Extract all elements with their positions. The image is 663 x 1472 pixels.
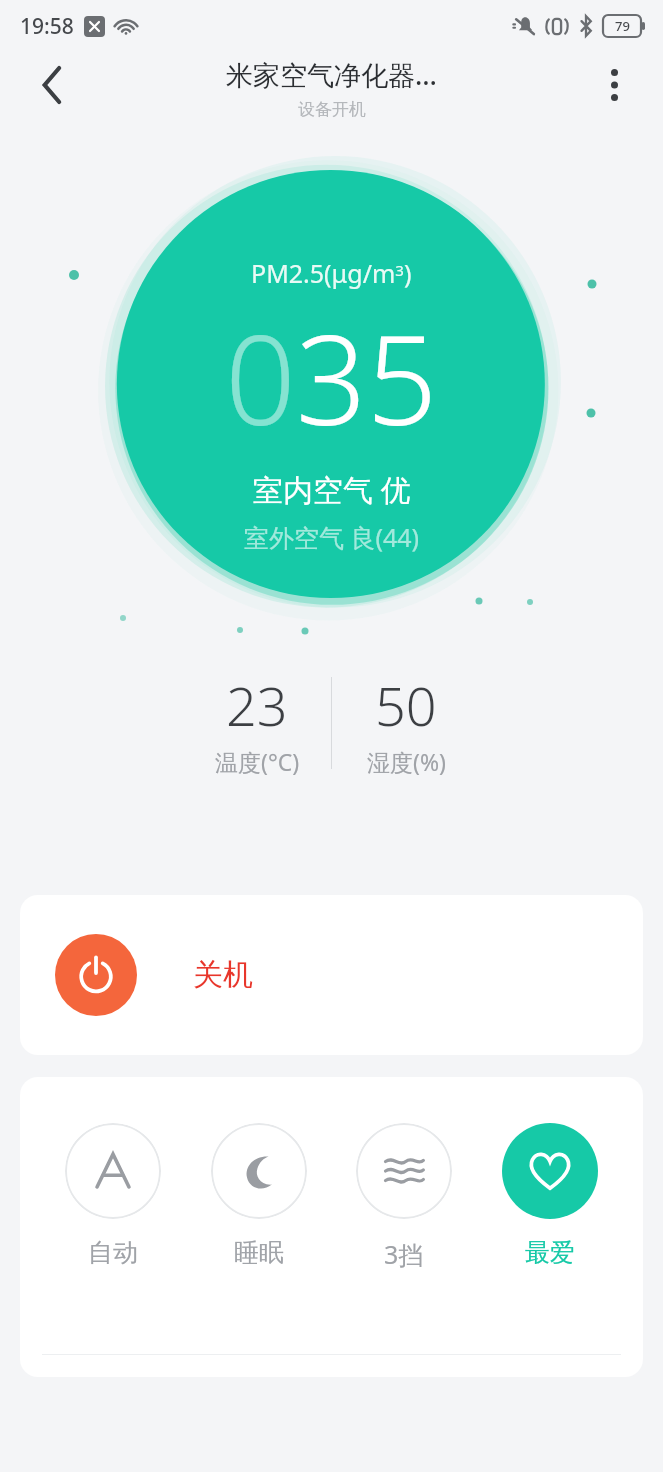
staticText: 035: [225, 292, 438, 461]
staticText: 关机: [193, 956, 253, 994]
button[interactable]: 睡眠: [207, 1119, 311, 1272]
staticText: 米家空气净化器…: [226, 56, 437, 93]
button[interactable]: Back: [22, 54, 84, 116]
button[interactable]: 最爱: [498, 1119, 602, 1272]
button[interactable]: 自动: [61, 1119, 165, 1272]
staticText: 睡眠: [234, 1237, 284, 1268]
staticText: 79: [615, 17, 630, 35]
staticText: PM2.5(μg/m3): [251, 256, 412, 290]
staticText: 23: [226, 668, 288, 742]
staticText: 50: [375, 668, 437, 742]
button[interactable]: 3挡: [352, 1119, 456, 1275]
staticText: 3挡: [384, 1237, 424, 1271]
staticText: 19:58: [20, 12, 74, 41]
staticText: 室内空气 优: [253, 469, 411, 510]
staticText: 湿度(%): [367, 746, 446, 777]
button[interactable]: 关机: [20, 895, 643, 1055]
staticText: 最爱: [525, 1237, 575, 1268]
staticText: 自动: [88, 1237, 138, 1268]
staticText: 设备开机: [298, 99, 366, 120]
staticText: 室外空气 良(44): [244, 520, 420, 554]
button[interactable]: More options: [585, 56, 643, 114]
staticText: 温度(°C): [215, 746, 300, 777]
